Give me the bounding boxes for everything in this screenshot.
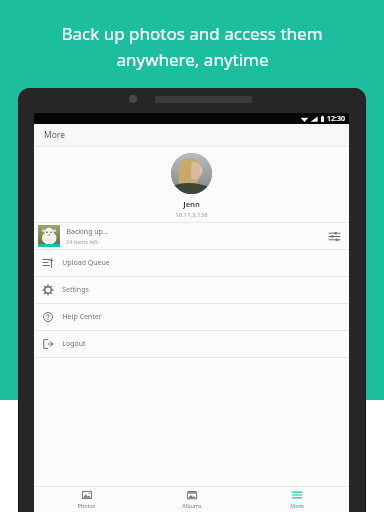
staticText: anywhere, anytime — [116, 48, 269, 71]
button[interactable]: More — [244, 487, 349, 512]
staticText: 24 items left — [66, 238, 98, 245]
button[interactable]: Upload Queue — [34, 250, 349, 276]
staticText: More — [290, 502, 304, 509]
button[interactable]: Settings — [34, 277, 349, 303]
button[interactable]: Photos — [34, 487, 139, 512]
button[interactable]: Backup settings — [323, 225, 345, 247]
staticText: Settings — [62, 285, 89, 295]
staticText: Backing up... — [66, 227, 109, 237]
staticText: Help Center — [62, 312, 102, 322]
button[interactable]: Albums — [139, 487, 244, 512]
button[interactable]: Help Center — [34, 304, 349, 330]
staticText: Upload Queue — [62, 258, 110, 268]
staticText: Jenn — [183, 199, 200, 209]
staticText: Albums — [182, 502, 202, 509]
staticText: More — [44, 129, 65, 141]
staticText: Back up photos and access them — [61, 22, 323, 45]
staticText: 12:30 — [327, 114, 345, 124]
staticText: Photos — [77, 502, 96, 509]
button[interactable]: Logout — [34, 331, 349, 357]
button[interactable]: Backing up... — [34, 223, 349, 249]
staticText: 10.11.3.138 — [175, 211, 208, 219]
button[interactable]: Jenn — [34, 147, 349, 222]
staticText: Logout — [62, 339, 86, 349]
